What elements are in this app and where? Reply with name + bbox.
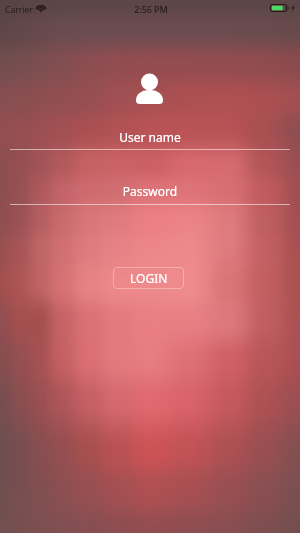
other: Wi-Fi signal [36,4,46,12]
staticText: 2:56 PM [1,3,300,15]
button[interactable]: LOGIN [113,267,184,289]
staticText: Carrier [5,3,33,15]
other: Battery charging [270,4,290,12]
staticText: LOGIN [130,270,168,286]
button[interactable]: User name [10,0,290,150]
button[interactable]: Password [10,0,290,205]
staticText: User name [10,129,290,145]
staticText: Password [10,183,290,199]
